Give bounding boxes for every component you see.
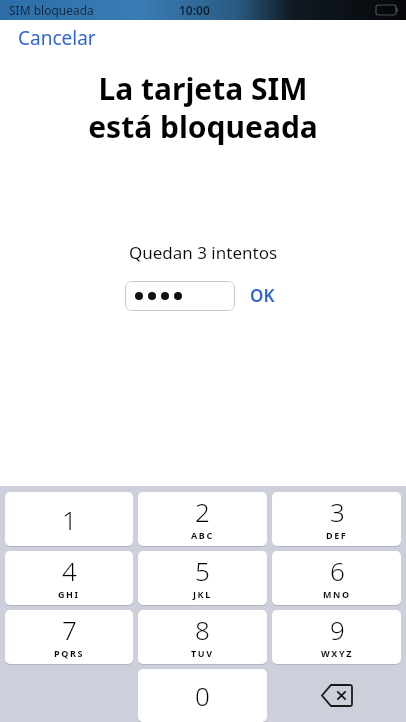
staticText: 0 xyxy=(195,678,210,713)
button[interactable]: 5 xyxy=(138,551,267,605)
staticText: TUV xyxy=(191,647,214,659)
button[interactable] xyxy=(125,281,235,311)
staticText: JKL xyxy=(193,588,212,600)
staticText: 5 xyxy=(195,553,210,588)
staticText: 10:00 xyxy=(179,2,210,18)
staticText: 8 xyxy=(195,612,210,647)
staticText: OK xyxy=(250,284,275,307)
staticText: 7 xyxy=(62,612,77,647)
button[interactable]: 1 xyxy=(5,492,133,546)
staticText: PQRS xyxy=(54,647,84,659)
button[interactable]: Delete xyxy=(272,669,401,722)
staticText: 3 xyxy=(330,494,345,529)
staticText: DEF xyxy=(326,529,348,541)
staticText: 9 xyxy=(330,612,345,647)
staticText: WXYZ xyxy=(321,647,353,659)
button[interactable]: 2 xyxy=(138,492,267,546)
button[interactable]: 9 xyxy=(272,610,401,664)
staticText: SIM bloqueada xyxy=(9,2,94,18)
staticText: MNO xyxy=(323,588,351,600)
staticText: 1 xyxy=(62,502,77,537)
button[interactable]: 0 xyxy=(138,669,267,722)
staticText: GHI xyxy=(58,588,80,600)
button[interactable]: 6 xyxy=(272,551,401,605)
button[interactable]: Cancelar xyxy=(0,21,108,55)
staticText: Quedan 3 intentos xyxy=(0,241,406,264)
staticText: La tarjeta SIM está bloqueada xyxy=(20,68,386,147)
staticText: ABC xyxy=(191,529,214,541)
button[interactable]: 4 xyxy=(5,551,133,605)
button[interactable]: OK xyxy=(244,280,281,311)
staticText: 6 xyxy=(330,553,345,588)
staticText: 4 xyxy=(62,553,77,588)
staticText: 2 xyxy=(195,494,210,529)
staticText: Cancelar xyxy=(18,25,96,51)
button[interactable]: 3 xyxy=(272,492,401,546)
button[interactable]: 7 xyxy=(5,610,133,664)
button[interactable]: 8 xyxy=(138,610,267,664)
